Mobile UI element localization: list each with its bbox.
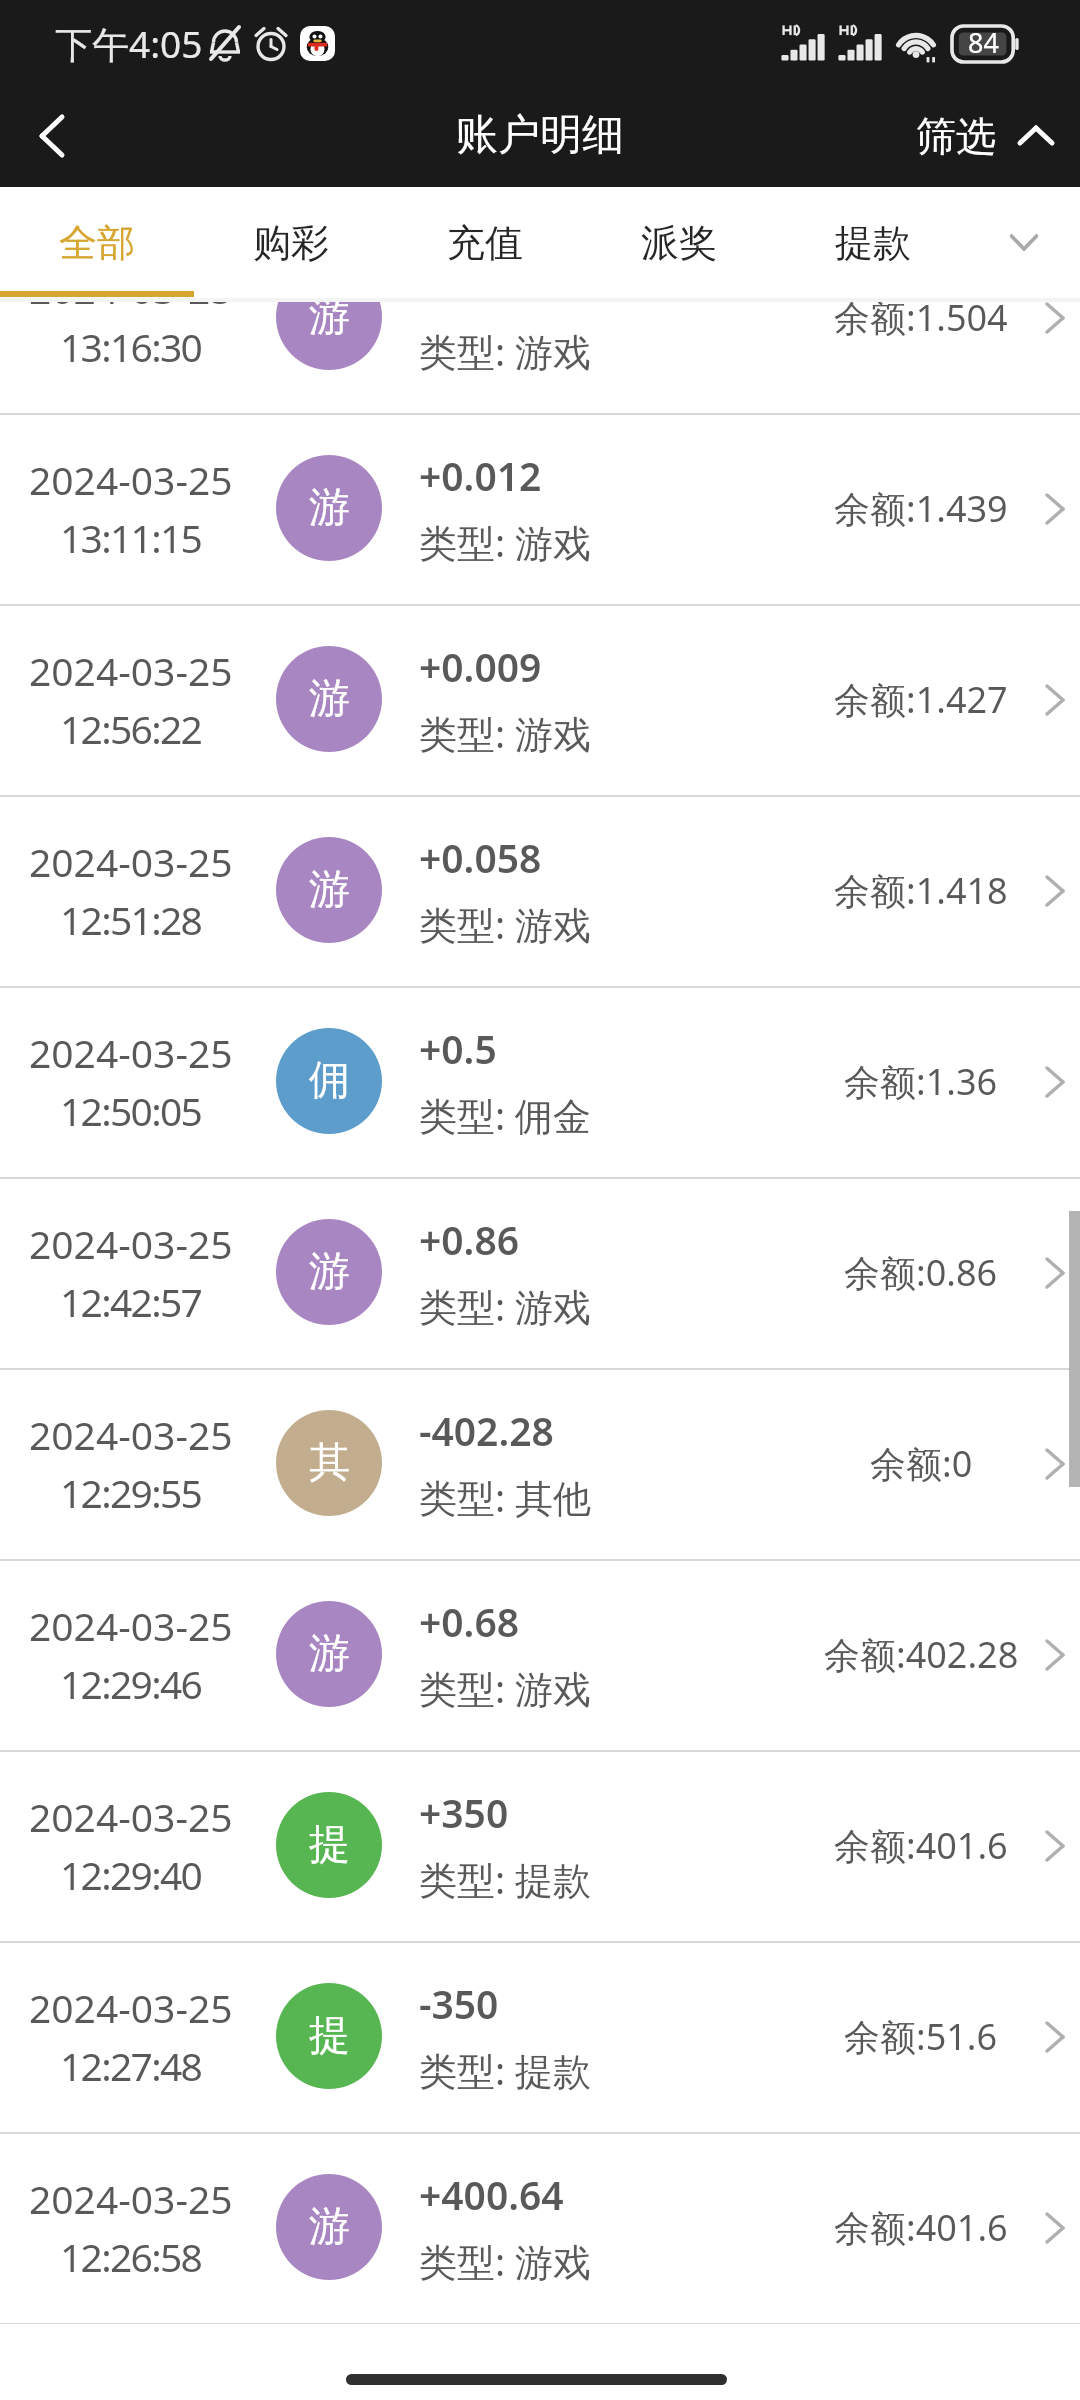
staticText: 余额:1.36 bbox=[844, 1057, 998, 1106]
staticText: 2024-03-25 bbox=[29, 1981, 233, 2034]
button[interactable]: 2024-03-25 bbox=[0, 988, 1080, 1179]
button[interactable]: 提款 bbox=[776, 187, 970, 298]
staticText: 账户明细 bbox=[456, 109, 624, 162]
staticText: 游 bbox=[309, 482, 350, 534]
staticText: 12:29:55 bbox=[60, 1466, 202, 1519]
staticText: 余额:0.86 bbox=[844, 1248, 998, 1297]
staticText: 2024-03-25 bbox=[29, 2172, 233, 2225]
staticText: 12:50:05 bbox=[60, 1084, 202, 1137]
staticText: 2024-03-25 bbox=[29, 1790, 233, 1843]
staticText: 游 bbox=[309, 1628, 350, 1680]
staticText: 充值 bbox=[447, 219, 523, 267]
staticText: 13:16:30 bbox=[60, 320, 202, 373]
staticText: +0.058 bbox=[419, 831, 542, 884]
staticText: 12:29:40 bbox=[60, 1848, 202, 1901]
button[interactable]: Back bbox=[0, 88, 102, 187]
staticText: 提款 bbox=[835, 219, 911, 267]
staticText: 类型: 提款 bbox=[419, 2044, 592, 2096]
staticText: 2024-03-25 bbox=[29, 1217, 233, 1270]
staticText: 余额:401.6 bbox=[834, 1821, 1008, 1870]
button[interactable]: 2024-03-25 bbox=[0, 1561, 1080, 1752]
staticText: 13:11:15 bbox=[60, 511, 202, 564]
staticText: 类型: 游戏 bbox=[419, 1280, 592, 1332]
staticText: 12:56:22 bbox=[60, 702, 202, 755]
button[interactable]: 充值 bbox=[388, 187, 582, 298]
staticText: 提 bbox=[309, 2010, 350, 2062]
staticText: 类型: 游戏 bbox=[419, 325, 592, 377]
staticText: 余额:51.6 bbox=[844, 2012, 998, 2061]
staticText: +0.065 bbox=[419, 298, 542, 311]
staticText: 12:26:58 bbox=[60, 2230, 202, 2283]
staticText: 余额:1.504 bbox=[834, 298, 1008, 342]
staticText: 类型: 游戏 bbox=[419, 516, 592, 568]
staticText: 余额:402.28 bbox=[824, 1630, 1019, 1679]
button[interactable]: 2024-03-25 bbox=[0, 1943, 1080, 2134]
staticText: 12:51:28 bbox=[60, 893, 202, 946]
button[interactable]: 2024-03-25 bbox=[0, 1752, 1080, 1943]
staticText: 12:42:57 bbox=[60, 1275, 202, 1328]
staticText: +0.86 bbox=[419, 1213, 519, 1266]
staticText: +0.5 bbox=[419, 1022, 497, 1075]
staticText: 2024-03-25 bbox=[29, 453, 233, 506]
staticText: +0.012 bbox=[419, 449, 542, 502]
button[interactable]: 筛选 bbox=[916, 111, 1058, 161]
staticText: 游 bbox=[309, 864, 350, 916]
button[interactable]: 2024-03-25 bbox=[0, 298, 1080, 415]
staticText: 2024-03-25 bbox=[29, 298, 233, 315]
staticText: +350 bbox=[419, 1786, 509, 1839]
button[interactable]: 2024-03-25 bbox=[0, 606, 1080, 797]
staticText: +0.009 bbox=[419, 640, 542, 693]
button[interactable]: 全部 bbox=[0, 187, 194, 298]
staticText: -402.28 bbox=[419, 1404, 554, 1457]
staticText: 2024-03-25 bbox=[29, 1408, 233, 1461]
button[interactable]: 2024-03-25 bbox=[0, 415, 1080, 606]
staticText: 下午4:05 bbox=[55, 18, 203, 69]
staticText: 2024-03-25 bbox=[29, 644, 233, 697]
staticText: 游 bbox=[309, 1246, 350, 1298]
staticText: 筛选 bbox=[916, 111, 996, 161]
staticText: 2024-03-25 bbox=[29, 1026, 233, 1079]
staticText: 84 bbox=[968, 24, 999, 61]
staticText: 12:29:46 bbox=[60, 1657, 202, 1710]
staticText: 类型: 游戏 bbox=[419, 2235, 592, 2287]
button[interactable]: 2024-03-25 bbox=[0, 1179, 1080, 1370]
staticText: 全部 bbox=[59, 219, 135, 267]
staticText: 提 bbox=[309, 1819, 350, 1871]
staticText: 类型: 佣金 bbox=[419, 1089, 592, 1141]
button[interactable]: 2024-03-25 bbox=[0, 1370, 1080, 1561]
staticText: 派奖 bbox=[641, 219, 717, 267]
staticText: 类型: 游戏 bbox=[419, 1662, 592, 1714]
staticText: 余额:0 bbox=[870, 1439, 973, 1488]
staticText: 游 bbox=[309, 2201, 350, 2253]
staticText: 类型: 提款 bbox=[419, 1853, 592, 1905]
staticText: 类型: 游戏 bbox=[419, 707, 592, 759]
staticText: 类型: 其他 bbox=[419, 1471, 592, 1523]
staticText: 余额:1.427 bbox=[834, 675, 1008, 724]
staticText: 类型: 游戏 bbox=[419, 898, 592, 950]
staticText: -350 bbox=[419, 1977, 499, 2030]
staticText: +0.68 bbox=[419, 1595, 519, 1648]
button[interactable]: 购彩 bbox=[194, 187, 388, 298]
staticText: 游 bbox=[309, 298, 350, 343]
staticText: 购彩 bbox=[253, 219, 329, 267]
staticText: 余额:1.418 bbox=[834, 866, 1008, 915]
staticText: 游 bbox=[309, 673, 350, 725]
staticText: 余额:1.439 bbox=[834, 484, 1008, 533]
staticText: +400.64 bbox=[419, 2168, 564, 2221]
staticText: 余额:401.6 bbox=[834, 2203, 1008, 2252]
staticText: 2024-03-25 bbox=[29, 835, 233, 888]
staticText: 其 bbox=[309, 1437, 350, 1489]
button[interactable]: 派奖 bbox=[582, 187, 776, 298]
button[interactable]: 2024-03-25 bbox=[0, 797, 1080, 988]
staticText: 12:27:48 bbox=[60, 2039, 202, 2092]
staticText: 2024-03-25 bbox=[29, 1599, 233, 1652]
staticText: 佣 bbox=[309, 1055, 350, 1107]
button[interactable]: 2024-03-25 bbox=[0, 2134, 1080, 2324]
button[interactable]: More filters bbox=[970, 187, 1080, 298]
